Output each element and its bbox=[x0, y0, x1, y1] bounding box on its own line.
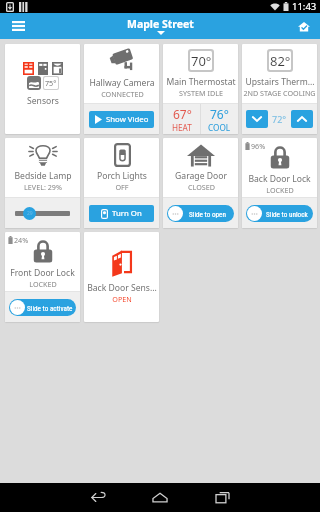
staticText: 24% bbox=[14, 235, 29, 245]
button[interactable]: 76° bbox=[201, 104, 238, 134]
button[interactable]: Home bbox=[137, 483, 183, 512]
button[interactable]: 67° bbox=[163, 104, 200, 134]
button[interactable]: Maple Street bbox=[121, 17, 200, 35]
staticText: Slide to unlock bbox=[266, 210, 308, 218]
button[interactable]: Slide to open bbox=[167, 205, 234, 222]
button[interactable]: Show Video bbox=[89, 111, 154, 128]
button[interactable]: Back Door Sens... bbox=[84, 232, 159, 322]
staticText: Front Door Lock bbox=[10, 267, 75, 279]
button[interactable]: Porch Lights bbox=[84, 138, 159, 228]
staticText: 96% bbox=[251, 141, 266, 151]
staticText: COOL bbox=[208, 122, 231, 133]
staticText: 72° bbox=[272, 113, 287, 125]
staticText: Show Video bbox=[106, 114, 149, 125]
staticText: 29 bbox=[27, 210, 33, 217]
staticText: Main Thermostat bbox=[166, 76, 236, 88]
button[interactable]: Open navigation menu bbox=[0, 13, 36, 39]
staticText: OPEN bbox=[112, 294, 132, 304]
staticText: 11:43 bbox=[292, 0, 317, 13]
button[interactable]: Home dashboard bbox=[288, 13, 320, 39]
staticText: Porch Lights bbox=[97, 170, 147, 182]
button[interactable]: Lower temperature bbox=[246, 110, 268, 128]
staticText: Slide to activate bbox=[27, 304, 73, 312]
staticText: SYSTEM IDLE bbox=[179, 88, 223, 98]
button[interactable]: Slide to activate bbox=[9, 299, 76, 316]
staticText: 76° bbox=[210, 106, 229, 122]
button[interactable]: 70° bbox=[163, 44, 238, 134]
staticText: CONNECTED bbox=[101, 89, 144, 99]
button[interactable]: Recent apps bbox=[199, 483, 245, 512]
button[interactable]: 29 bbox=[15, 203, 70, 223]
button[interactable]: Garage Door bbox=[163, 138, 238, 228]
staticText: Hallway Camera bbox=[89, 77, 155, 89]
button[interactable]: 75° bbox=[5, 44, 80, 134]
staticText: 82° bbox=[270, 52, 291, 70]
staticText: 67° bbox=[173, 106, 192, 122]
button[interactable]: Bedside Lamp bbox=[5, 138, 80, 228]
staticText: LEVEL: 29% bbox=[24, 182, 62, 192]
staticText: Garage Door bbox=[175, 170, 227, 182]
staticText: Slide to open bbox=[189, 210, 226, 218]
button[interactable]: Raise temperature bbox=[291, 110, 313, 128]
staticText: Back Door Sens... bbox=[87, 282, 157, 294]
staticText: HEAT bbox=[172, 122, 192, 133]
button[interactable]: Slide to unlock bbox=[246, 205, 313, 222]
button[interactable]: 24% bbox=[5, 232, 80, 322]
staticText: LOCKED bbox=[29, 279, 57, 289]
staticText: LOCKED bbox=[266, 185, 294, 195]
button[interactable]: Hallway Camera bbox=[84, 44, 159, 134]
staticText: 75° bbox=[45, 78, 57, 88]
staticText: Back Door Lock bbox=[248, 173, 311, 185]
staticText: Upstairs Therm... bbox=[245, 76, 315, 88]
staticText: 70° bbox=[191, 52, 212, 70]
staticText: Sensors bbox=[27, 95, 59, 107]
staticText: CLOSED bbox=[188, 182, 215, 192]
button[interactable]: Back bbox=[75, 483, 121, 512]
button[interactable]: 96% bbox=[242, 138, 317, 228]
staticText: 2ND STAGE COOLING bbox=[243, 88, 316, 98]
staticText: OFF bbox=[115, 182, 129, 192]
button[interactable]: Turn On bbox=[89, 205, 154, 222]
staticText: Turn On bbox=[112, 208, 142, 219]
staticText: Maple Street bbox=[127, 17, 194, 31]
staticText: Bedside Lamp bbox=[14, 170, 72, 182]
button[interactable]: 82° bbox=[242, 44, 317, 134]
